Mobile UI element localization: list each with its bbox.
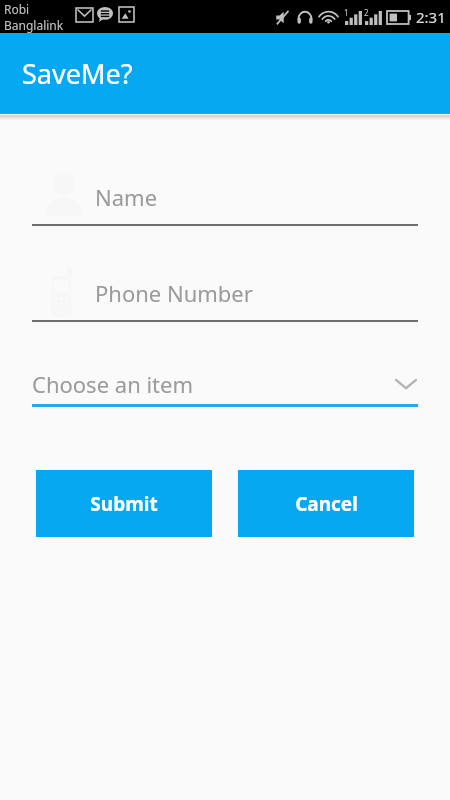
staticText: Banglalink xyxy=(4,17,64,33)
staticText: Submit xyxy=(90,491,158,517)
button[interactable]: Phone Number xyxy=(0,264,450,322)
button[interactable]: Name xyxy=(0,168,450,226)
staticText: Choose an item xyxy=(32,369,194,399)
staticText: 1 xyxy=(344,7,349,18)
button[interactable]: Submit xyxy=(36,470,212,537)
staticText: 2 xyxy=(364,7,369,18)
staticText: Name xyxy=(95,182,158,212)
staticText: SaveMe? xyxy=(22,55,133,92)
staticText: 2:31 xyxy=(416,7,446,27)
button[interactable]: Choose an item xyxy=(0,364,450,407)
staticText: Phone Number xyxy=(95,278,253,308)
staticText: Cancel xyxy=(295,491,358,517)
staticText: Robi xyxy=(4,1,30,17)
button[interactable]: Cancel xyxy=(238,470,414,537)
